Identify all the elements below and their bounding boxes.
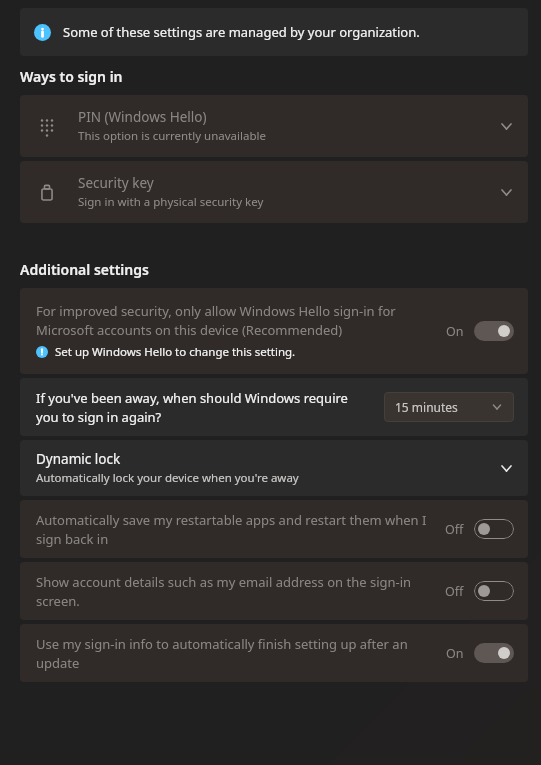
button[interactable]: Toggle on xyxy=(474,643,514,663)
button[interactable]: PIN (Windows Hello) xyxy=(20,95,528,157)
staticText: Sign in with a physical security key xyxy=(78,194,264,210)
staticText: Off xyxy=(445,583,464,600)
button[interactable]: Toggle off xyxy=(474,519,514,539)
staticText: On xyxy=(446,645,464,662)
staticText: If you've been away, when should Windows… xyxy=(36,389,372,426)
staticText: PIN (Windows Hello) xyxy=(78,108,207,126)
button[interactable]: If you've been away, when should Windows… xyxy=(20,378,528,436)
staticText: Automatically lock your device when you'… xyxy=(36,470,299,486)
staticText: Automatically save my restartable apps a… xyxy=(36,511,435,548)
button[interactable]: Show account details such as my email ad… xyxy=(20,562,528,620)
staticText: Show account details such as my email ad… xyxy=(36,573,435,610)
staticText: Dynamic lock xyxy=(36,450,121,468)
staticText: Security key xyxy=(78,174,154,192)
staticText: Ways to sign in xyxy=(20,67,123,86)
button[interactable]: Some of these settings are managed by yo… xyxy=(20,8,528,56)
staticText: Set up Windows Hello to change this sett… xyxy=(55,344,296,360)
staticText: This option is currently unavailable xyxy=(78,128,266,144)
staticText: 15 minutes xyxy=(395,399,491,415)
button[interactable]: Dynamic lock xyxy=(20,440,528,496)
staticText: On xyxy=(446,323,464,340)
button[interactable]: Security key xyxy=(20,161,528,223)
staticText: Use my sign-in info to automatically fin… xyxy=(36,635,436,672)
button[interactable]: For improved security, only allow Window… xyxy=(20,288,528,374)
button[interactable]: Automatically save my restartable apps a… xyxy=(20,500,528,558)
staticText: Off xyxy=(445,521,464,538)
staticText: For improved security, only allow Window… xyxy=(36,302,436,339)
button[interactable]: Toggle off xyxy=(474,581,514,601)
button[interactable]: Toggle on xyxy=(474,321,514,341)
button[interactable]: 15 minutes xyxy=(384,392,514,422)
button[interactable]: Use my sign-in info to automatically fin… xyxy=(20,624,528,682)
staticText: Additional settings xyxy=(20,260,149,279)
staticText: Some of these settings are managed by yo… xyxy=(63,23,420,41)
